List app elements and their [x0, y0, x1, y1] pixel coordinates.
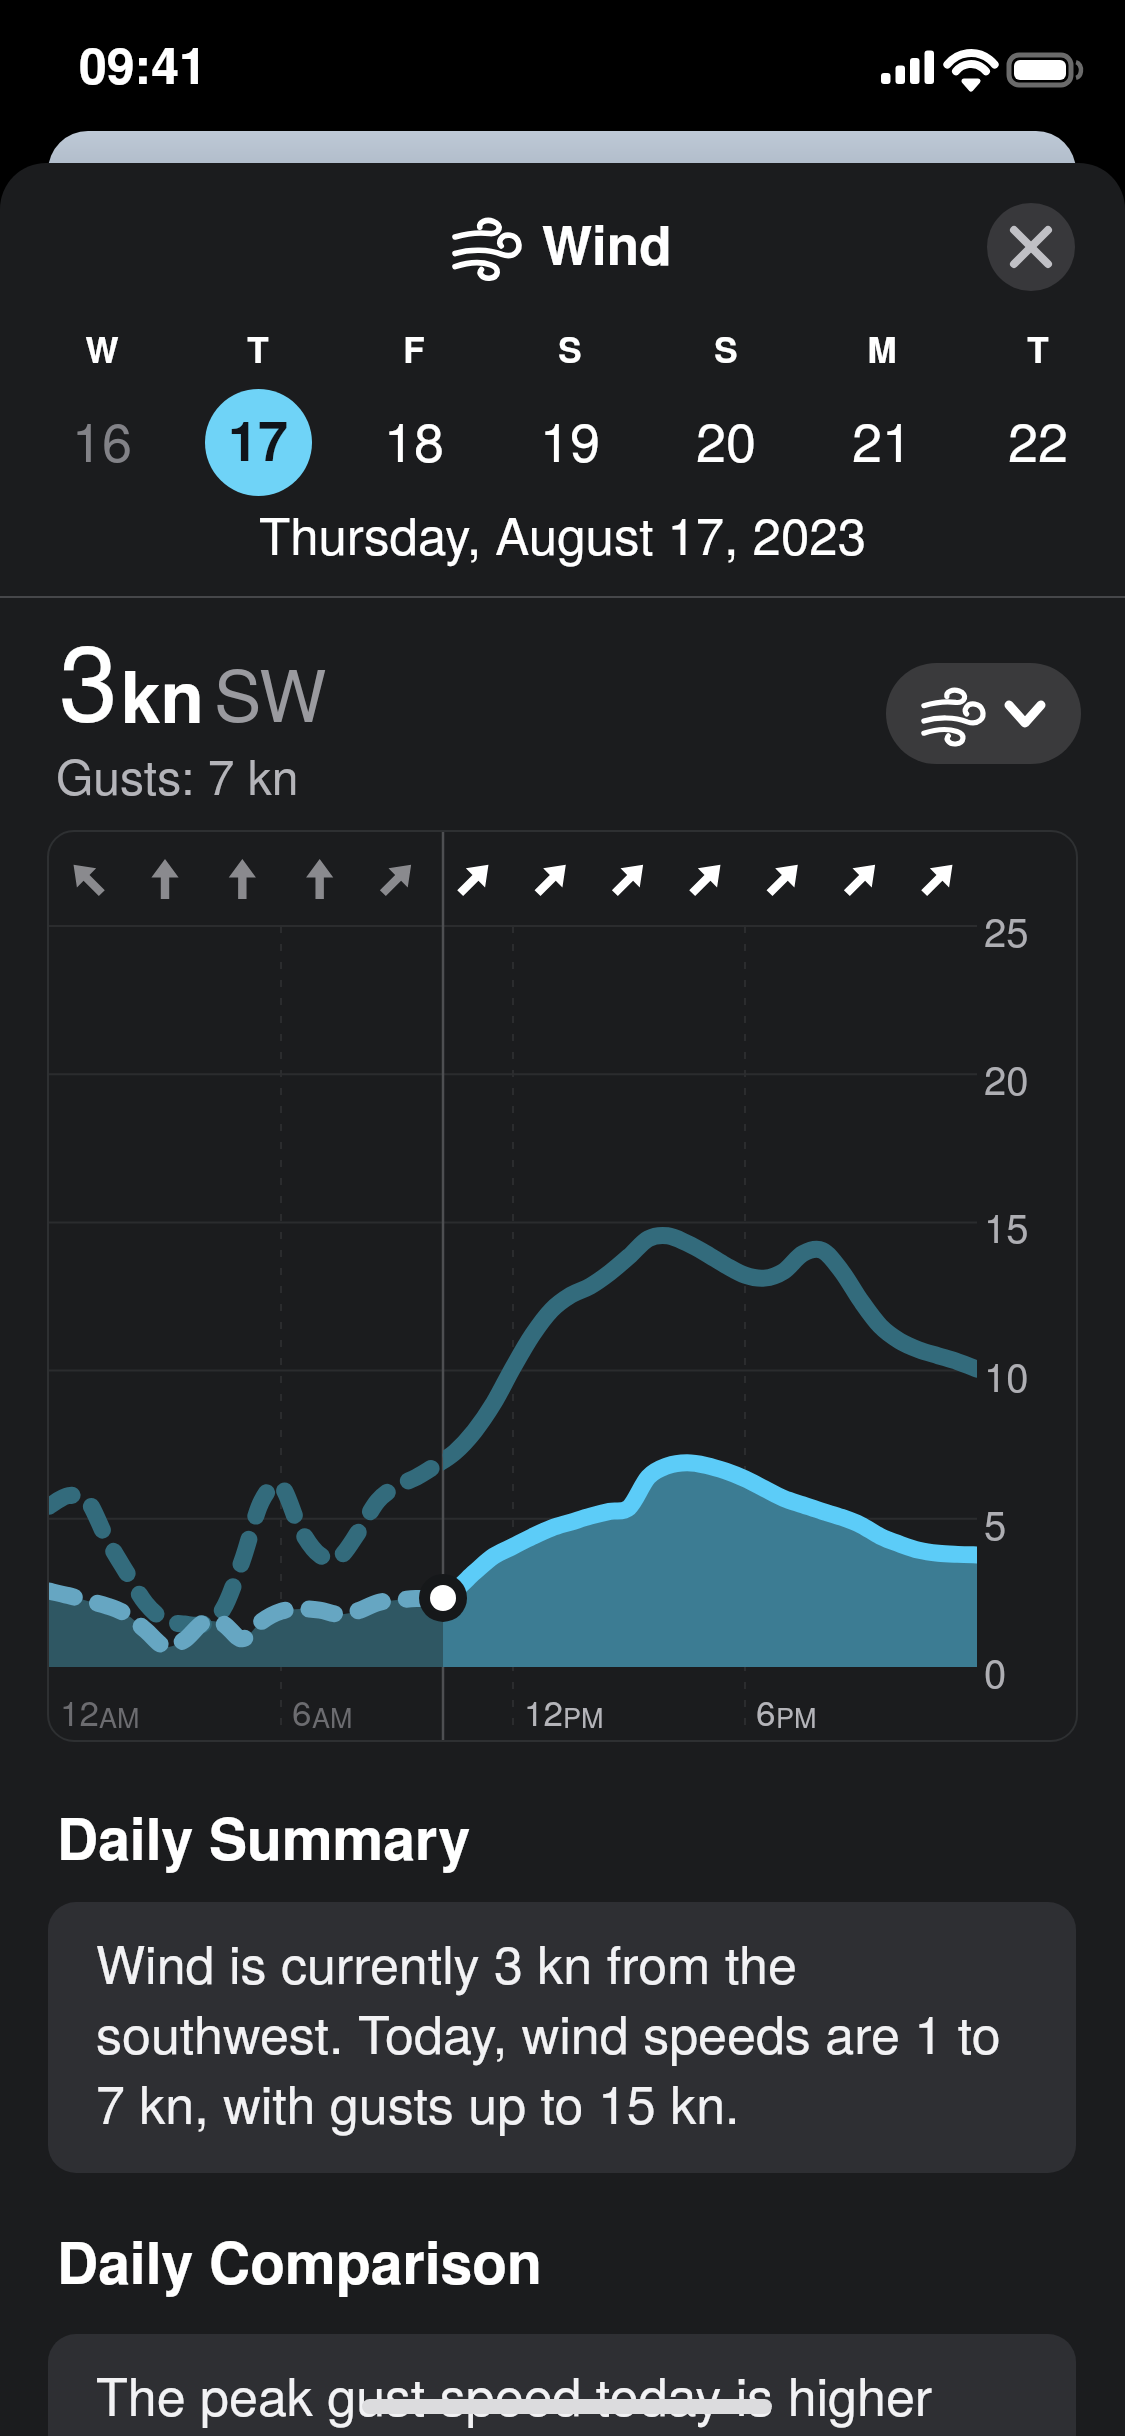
staticText: Thursday, August 17, 2023: [0, 496, 1125, 569]
staticText: Wind: [542, 205, 672, 281]
button[interactable]: Wind is currently 3 kn from the southwes…: [48, 1902, 1076, 2173]
staticText: 16: [72, 400, 133, 477]
staticText: S: [648, 324, 804, 374]
staticText: 12: [60, 1686, 99, 1736]
staticText: Daily Summary: [57, 1796, 471, 1878]
button[interactable]: F: [336, 324, 492, 509]
button[interactable]: T: [180, 324, 336, 509]
staticText: 3: [59, 599, 118, 751]
button[interactable]: M: [804, 324, 960, 509]
staticText: M: [804, 324, 960, 374]
staticText: T: [180, 324, 336, 374]
staticText: 6: [292, 1686, 312, 1736]
staticText: 10: [984, 1346, 1029, 1403]
staticText: 22: [1008, 400, 1069, 477]
staticText: Gusts: 7 kn: [56, 740, 299, 809]
staticText: 0: [984, 1642, 1007, 1699]
staticText: 17: [228, 400, 289, 477]
button[interactable]: Close: [987, 203, 1075, 291]
staticText: 25: [984, 901, 1029, 958]
staticText: kn: [121, 643, 204, 745]
staticText: AM: [99, 1697, 140, 1736]
staticText: S: [492, 324, 648, 374]
staticText: 19: [540, 400, 601, 477]
staticText: 18: [384, 400, 445, 477]
staticText: 15: [984, 1197, 1029, 1254]
staticText: 5: [984, 1494, 1007, 1551]
button[interactable]: S: [492, 324, 648, 509]
staticText: T: [960, 324, 1116, 374]
staticText: W: [24, 324, 180, 374]
button[interactable]: The peak gust speed today is higher than…: [48, 2334, 1076, 2436]
staticText: Wind is currently 3 kn from the southwes…: [96, 1924, 1014, 2139]
staticText: The peak gust speed today is higher than…: [96, 2356, 1014, 2436]
staticText: 20: [696, 400, 757, 477]
staticText: 21: [852, 400, 913, 477]
staticText: PM: [776, 1697, 817, 1736]
button[interactable]: Change wind units: [886, 663, 1081, 764]
staticText: 12: [524, 1686, 563, 1736]
staticText: 6: [756, 1686, 776, 1736]
staticText: SW: [214, 640, 327, 742]
staticText: PM: [563, 1697, 604, 1736]
button[interactable]: S: [648, 324, 804, 509]
staticText: AM: [312, 1697, 353, 1736]
button[interactable]: T: [960, 324, 1116, 509]
staticText: Daily Comparison: [57, 2220, 542, 2302]
button[interactable]: W: [24, 324, 180, 509]
staticText: F: [336, 324, 492, 374]
staticText: 20: [984, 1049, 1029, 1106]
staticText: 09:41: [79, 28, 207, 100]
